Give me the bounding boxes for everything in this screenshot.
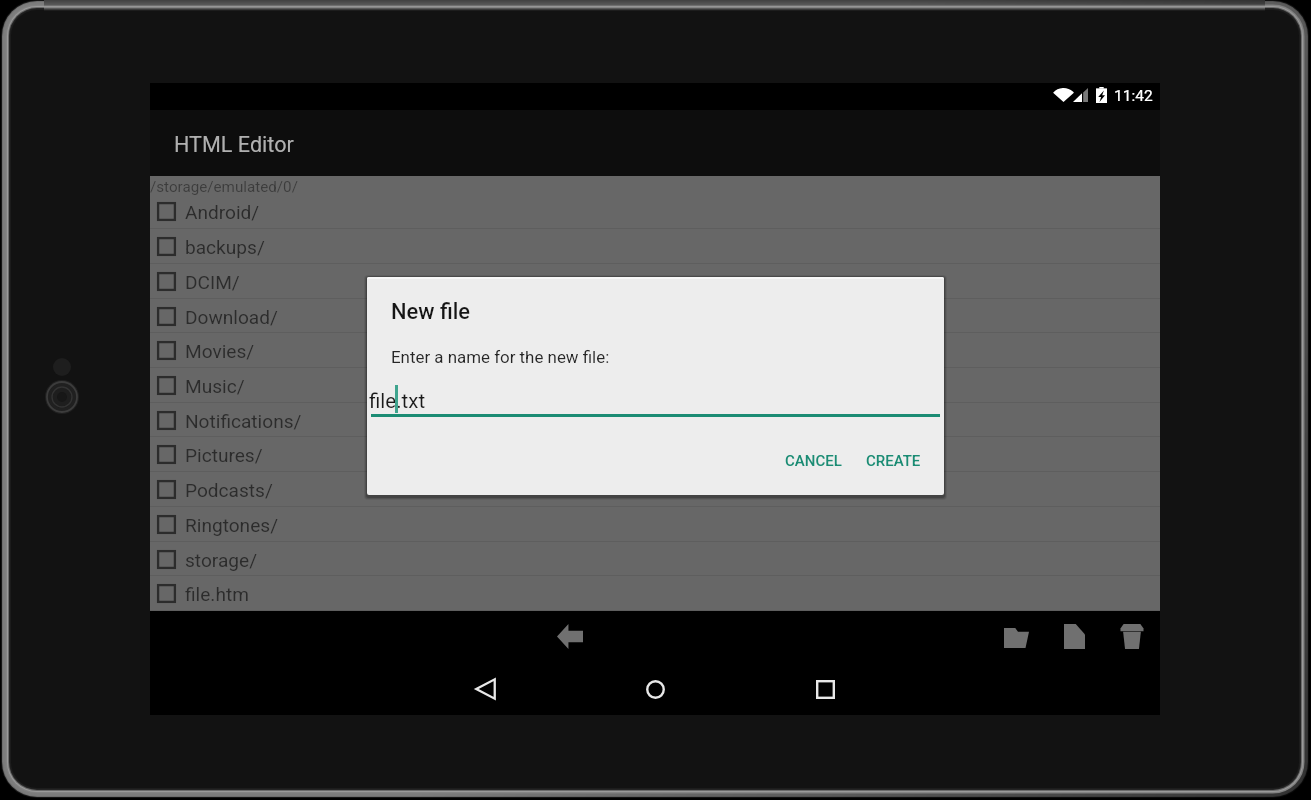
button[interactable]: Movies/ (150, 333, 1160, 368)
staticText: file.htm (185, 583, 249, 605)
button[interactable]: storage/ (150, 542, 1160, 577)
staticText: Podcasts/ (185, 479, 273, 501)
button[interactable]: Music/ (150, 368, 1160, 403)
staticText: Notifications/ (185, 410, 302, 432)
button[interactable]: backups/ (150, 229, 1160, 264)
button[interactable]: file.htm (150, 576, 1160, 611)
button[interactable]: Recents (816, 680, 835, 699)
button[interactable]: Android/ (150, 194, 1160, 229)
button[interactable]: New folder (1004, 628, 1029, 648)
button[interactable]: DCIM/ (150, 264, 1160, 299)
button[interactable]: Home (645, 679, 666, 700)
staticText: file.txt (369, 389, 426, 413)
button[interactable]: Back (557, 624, 583, 649)
staticText: New file (391, 299, 471, 325)
staticText: Enter a name for the new file: (391, 347, 610, 367)
staticText: Pictures/ (185, 444, 263, 466)
staticText: Ringtones/ (185, 514, 279, 536)
button[interactable]: Podcasts/ (150, 472, 1160, 507)
staticText: CANCEL (785, 452, 842, 470)
staticText: Music/ (185, 375, 245, 397)
staticText: /storage/emulated/0/ (150, 178, 298, 196)
staticText: storage/ (185, 549, 258, 571)
staticText: Android/ (185, 201, 260, 223)
staticText: backups/ (185, 236, 265, 258)
staticText: HTML Editor (174, 132, 294, 157)
button[interactable]: Back (475, 678, 496, 700)
staticText: Download/ (185, 306, 278, 328)
staticText: CREATE (866, 452, 921, 470)
button[interactable]: CANCEL (779, 445, 848, 477)
button[interactable]: Download/ (150, 299, 1160, 334)
button[interactable]: New file (1064, 624, 1085, 649)
staticText: 11:42 (1114, 87, 1153, 105)
staticText: Movies/ (185, 340, 255, 362)
button[interactable]: Ringtones/ (150, 507, 1160, 542)
button[interactable]: Delete (1120, 624, 1144, 649)
button[interactable]: Notifications/ (150, 403, 1160, 438)
staticText: DCIM/ (185, 271, 240, 293)
button[interactable]: CREATE (860, 445, 927, 477)
button[interactable]: Pictures/ (150, 437, 1160, 472)
